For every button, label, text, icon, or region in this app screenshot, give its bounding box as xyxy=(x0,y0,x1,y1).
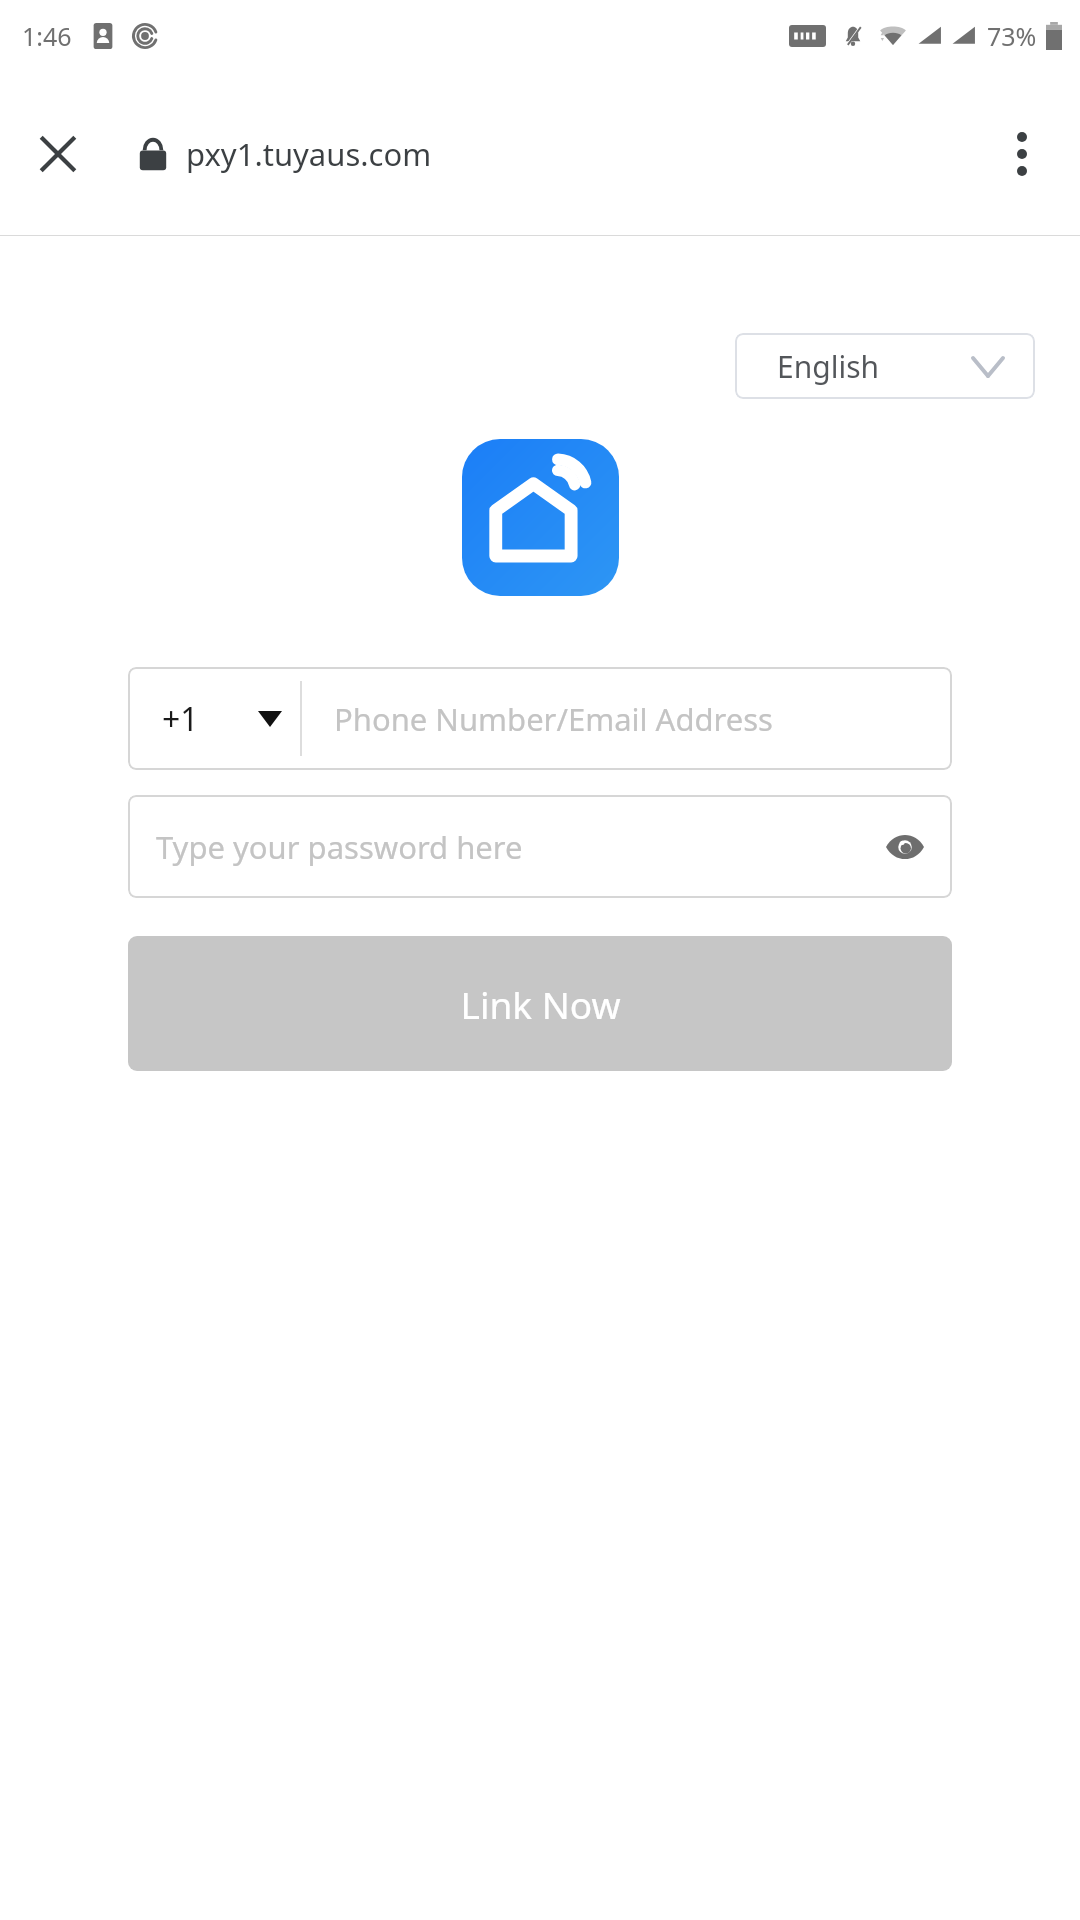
button[interactable]: Show password xyxy=(870,812,940,882)
button[interactable]: Close xyxy=(22,118,94,190)
staticText: Phone Number/Email Address xyxy=(334,698,773,740)
staticText: English xyxy=(777,346,880,387)
staticText: +1 xyxy=(162,697,199,741)
staticText: 73% xyxy=(987,19,1037,53)
button[interactable]: +1 xyxy=(128,667,300,770)
button[interactable]: Link Now xyxy=(128,936,952,1071)
staticText: Type your password here xyxy=(156,826,523,868)
button[interactable]: pxy1.tuyaus.com xyxy=(138,133,432,175)
button[interactable]: More options xyxy=(984,116,1060,192)
staticText: Link Now xyxy=(460,979,621,1029)
button[interactable]: English xyxy=(735,333,1035,399)
staticText: 1:46 xyxy=(22,19,72,53)
staticText: pxy1.tuyaus.com xyxy=(186,133,432,175)
button[interactable]: Phone Number/Email Address xyxy=(302,667,952,770)
button[interactable]: Type your password here xyxy=(128,795,952,898)
